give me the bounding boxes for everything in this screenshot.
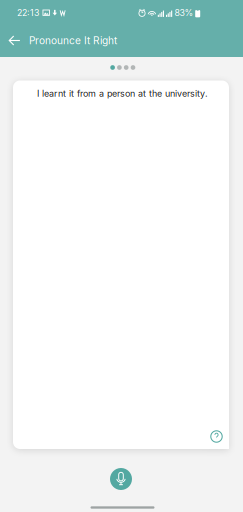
staticText: 83% — [174, 7, 193, 18]
button[interactable]: Back — [0, 24, 29, 57]
button[interactable]: Help — [204, 424, 229, 449]
staticText: I learnt it from a person at the univers… — [37, 88, 208, 99]
staticText: Pronounce It Right — [29, 34, 117, 47]
button[interactable]: Record — [104, 462, 138, 496]
staticText: 22:13 — [17, 7, 39, 18]
